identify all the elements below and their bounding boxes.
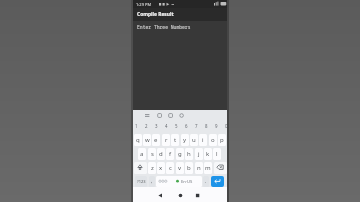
button[interactable] (175, 191, 184, 200)
staticText: j (198, 150, 200, 158)
button[interactable] (134, 162, 147, 174)
staticText: r (165, 136, 168, 144)
button[interactable]: a (138, 148, 146, 160)
staticText: q (136, 136, 140, 144)
button[interactable]: y (181, 134, 189, 146)
staticText: o (211, 136, 215, 144)
button[interactable]: k (204, 148, 212, 160)
staticText: a (140, 150, 144, 158)
staticText: z (151, 164, 154, 172)
staticText: f (169, 150, 172, 158)
staticText: 7 (195, 123, 198, 129)
staticText: u (192, 136, 196, 144)
staticText: c (169, 164, 172, 172)
button[interactable]: b (185, 162, 193, 174)
button[interactable] (214, 162, 227, 174)
button[interactable]: v (176, 162, 184, 174)
staticText: x (159, 164, 163, 172)
staticText: 9 (215, 123, 218, 129)
button[interactable] (211, 176, 224, 187)
button[interactable]: 2 (141, 121, 151, 131)
button[interactable] (135, 176, 147, 187)
staticText: n (197, 164, 201, 172)
staticText: Enter Three Numbers (137, 24, 191, 30)
button[interactable]: u (190, 134, 198, 146)
staticText: t (174, 136, 177, 144)
staticText: , (151, 178, 153, 185)
staticText: d (159, 150, 163, 158)
staticText: w (145, 136, 150, 144)
button[interactable]: i (199, 134, 207, 146)
button[interactable]: c (166, 162, 174, 174)
button[interactable] (156, 191, 164, 200)
button[interactable]: 3 (151, 121, 161, 131)
button[interactable]: 8 (201, 121, 211, 131)
staticText: En·US (181, 179, 193, 185)
button[interactable]: e (152, 134, 160, 146)
button[interactable]: 0 (221, 121, 231, 131)
button[interactable]: n (195, 162, 203, 174)
button[interactable]: j (195, 148, 203, 160)
button[interactable]: 4 (161, 121, 171, 131)
button[interactable]: w (143, 134, 151, 146)
button[interactable]: Compile Result (133, 8, 227, 21)
button[interactable]: g (176, 148, 184, 160)
button[interactable]: q (134, 134, 142, 146)
staticText: k (206, 150, 210, 158)
staticText: v (178, 164, 182, 172)
staticText: e (154, 136, 158, 144)
staticText: 3 (155, 123, 158, 129)
staticText: p (220, 136, 224, 144)
button[interactable]: 5 (171, 121, 181, 131)
staticText: Compile Result (137, 11, 174, 18)
button[interactable]: d (157, 148, 165, 160)
button[interactable]: , (149, 176, 155, 187)
button[interactable]: 7 (191, 121, 201, 131)
staticText: 8 (205, 123, 208, 129)
staticText: g (178, 150, 182, 158)
staticText: 6 (185, 123, 188, 129)
button[interactable]: r (162, 134, 170, 146)
staticText: 1:29 PM (136, 2, 152, 7)
staticText: i (202, 136, 204, 144)
staticText: 5 (175, 123, 178, 129)
button[interactable]: x (157, 162, 165, 174)
button[interactable]: m (204, 162, 212, 174)
button[interactable]: o (209, 134, 217, 146)
button[interactable] (193, 191, 202, 200)
staticText: s (151, 150, 154, 158)
button[interactable]: . (203, 176, 209, 187)
button[interactable]: h (185, 148, 193, 160)
button[interactable]: p (218, 134, 226, 146)
staticText: m (205, 164, 211, 172)
staticText: 4 (165, 123, 168, 129)
staticText: y (183, 136, 187, 144)
staticText: 0 (225, 123, 228, 129)
button[interactable]: 9 (211, 121, 221, 131)
button[interactable]: 1 (131, 121, 141, 131)
staticText: . (205, 178, 207, 185)
button[interactable]: En·US (156, 176, 202, 187)
button[interactable]: z (148, 162, 156, 174)
button[interactable]: 6 (181, 121, 191, 131)
staticText: b (187, 164, 191, 172)
staticText: 2 (145, 123, 148, 129)
button[interactable]: t (171, 134, 179, 146)
button[interactable]: f (166, 148, 174, 160)
staticText: ?123 (137, 179, 146, 184)
button[interactable]: s (148, 148, 156, 160)
staticText: l (216, 150, 218, 158)
staticText: 1 (135, 123, 138, 129)
button[interactable]: l (213, 148, 221, 160)
staticText: h (187, 150, 191, 158)
